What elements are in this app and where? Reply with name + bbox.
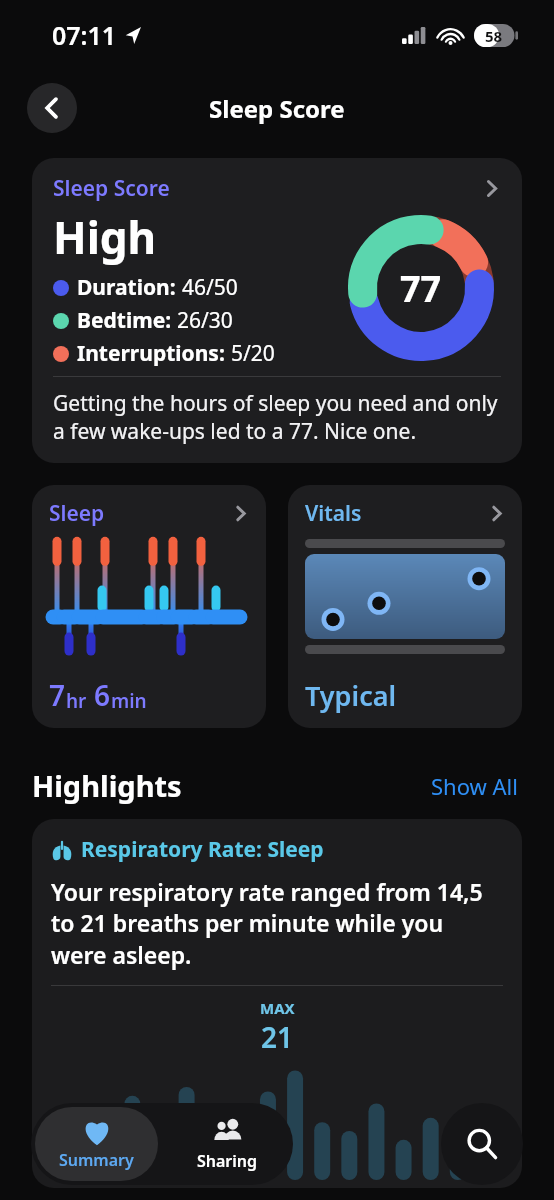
- button[interactable]: Sleep Score: [32, 158, 522, 463]
- staticText: 26/30: [177, 306, 233, 335]
- staticText: Show All: [431, 771, 518, 801]
- staticText: High: [53, 207, 157, 267]
- staticText: Getting the hours of sleep you need and …: [53, 389, 501, 445]
- staticText: 46/50: [182, 273, 238, 302]
- staticText: Sleep Score: [53, 174, 170, 203]
- staticText: 58: [485, 26, 503, 46]
- staticText: min: [111, 688, 147, 714]
- staticText: Sharing: [197, 1150, 258, 1172]
- staticText: Typical: [305, 677, 397, 714]
- button[interactable]: Show All: [427, 767, 522, 805]
- button[interactable]: Back: [27, 83, 77, 133]
- staticText: 77: [400, 264, 442, 313]
- staticText: Your respiratory rate ranged from 14,5 t…: [51, 876, 503, 971]
- button[interactable]: Sleep: [32, 485, 266, 728]
- staticText: 7: [49, 676, 66, 714]
- staticText: 6: [94, 676, 111, 714]
- button[interactable]: Search: [441, 1103, 523, 1185]
- staticText: Sleep Score: [209, 92, 345, 125]
- button[interactable]: Vitals: [288, 485, 522, 728]
- staticText: 07:11: [52, 18, 117, 52]
- staticText: Vitals: [305, 499, 362, 528]
- button[interactable]: Summary: [35, 1107, 158, 1181]
- staticText: 21: [261, 1018, 294, 1056]
- staticText: Sleep: [49, 499, 105, 528]
- staticText: Interruptions:: [77, 339, 231, 368]
- staticText: MAX: [260, 998, 295, 1018]
- staticText: 5/20: [231, 339, 275, 368]
- staticText: Highlights: [32, 766, 182, 805]
- button[interactable]: Respiratory Rate: Sleep: [32, 819, 522, 1188]
- button[interactable]: Sharing: [162, 1103, 293, 1185]
- staticText: Bedtime:: [77, 306, 177, 335]
- staticText: Summary: [59, 1149, 134, 1171]
- staticText: Duration:: [77, 273, 182, 302]
- staticText: Respiratory Rate: Sleep: [81, 835, 324, 864]
- staticText: hr: [66, 688, 87, 714]
